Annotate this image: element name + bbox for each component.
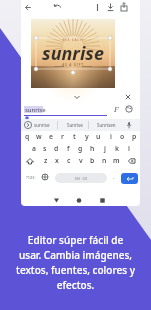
staticText: ?123 xyxy=(26,175,35,180)
button[interactable]: o xyxy=(117,131,128,142)
button[interactable]: x xyxy=(51,155,62,166)
button[interactable] xyxy=(40,172,50,182)
button[interactable]: h xyxy=(87,143,98,154)
staticText: SEE EACH xyxy=(31,38,115,42)
staticText: sunrise xyxy=(31,41,115,66)
button[interactable]: s xyxy=(39,143,50,154)
button[interactable] xyxy=(73,93,81,101)
staticText: c xyxy=(67,156,71,165)
button[interactable] xyxy=(105,0,116,15)
staticText: . xyxy=(113,173,115,181)
staticText: g xyxy=(78,144,83,153)
staticText: f xyxy=(67,144,70,153)
button[interactable]: Sunrise xyxy=(62,119,87,131)
staticText: p xyxy=(132,132,137,141)
button[interactable] xyxy=(93,0,102,15)
button[interactable]: e xyxy=(45,131,56,142)
staticText: u xyxy=(96,132,101,141)
button[interactable]: g xyxy=(75,143,86,154)
staticText: o xyxy=(120,132,125,141)
staticText: l xyxy=(128,144,130,153)
button[interactable]: EN · US xyxy=(55,173,107,183)
button[interactable]: l xyxy=(123,143,134,154)
button[interactable]: t xyxy=(69,131,80,142)
staticText: w xyxy=(36,132,42,141)
button[interactable]: d xyxy=(51,143,62,154)
staticText: Editor súper fácil de usar. Cambia imáge… xyxy=(0,233,151,292)
button[interactable] xyxy=(23,120,33,130)
button[interactable]: F xyxy=(114,104,119,114)
staticText: h xyxy=(90,144,95,153)
staticText: i xyxy=(110,132,112,141)
button[interactable]: y xyxy=(81,131,92,142)
button[interactable]: sunrise xyxy=(29,119,54,131)
staticText: sunrise xyxy=(34,122,50,128)
staticText: r xyxy=(61,132,64,141)
staticText: EN · US xyxy=(75,176,88,181)
button[interactable]: u xyxy=(93,131,104,142)
staticText: n xyxy=(102,156,107,165)
button[interactable] xyxy=(21,0,37,15)
staticText: Sunrisen xyxy=(97,122,116,128)
button[interactable] xyxy=(118,0,130,15)
button[interactable] xyxy=(124,104,134,114)
staticText: z xyxy=(44,156,48,165)
button[interactable] xyxy=(124,93,132,101)
staticText: m xyxy=(113,156,120,165)
button[interactable] xyxy=(51,0,64,15)
button[interactable]: sunrise xyxy=(24,105,107,117)
button[interactable]: ?123 xyxy=(23,171,37,183)
button[interactable]: w xyxy=(33,131,44,142)
button[interactable]: b xyxy=(87,155,98,166)
button[interactable]: i xyxy=(105,131,116,142)
button[interactable]: z xyxy=(40,155,51,166)
button[interactable]: . xyxy=(109,171,119,183)
staticText: b xyxy=(90,156,95,165)
staticText: a xyxy=(32,144,36,153)
staticText: v xyxy=(79,156,83,165)
button[interactable]: j xyxy=(99,143,110,154)
staticText: k xyxy=(115,144,119,153)
button[interactable] xyxy=(24,156,36,166)
button[interactable]: q xyxy=(22,131,33,142)
staticText: q xyxy=(25,132,30,141)
button[interactable]: n xyxy=(99,155,110,166)
button[interactable] xyxy=(124,120,134,130)
staticText: s xyxy=(43,144,47,153)
button[interactable]: c xyxy=(63,155,74,166)
button[interactable]: a xyxy=(28,143,39,154)
button[interactable]: f xyxy=(63,143,74,154)
staticText: d xyxy=(54,144,59,153)
staticText: e xyxy=(49,132,53,141)
staticText: y xyxy=(85,132,89,141)
button[interactable]: r xyxy=(57,131,68,142)
staticText: t xyxy=(73,132,76,141)
button[interactable]: k xyxy=(111,143,122,154)
staticText: Sunrise xyxy=(67,122,83,128)
button[interactable]: v xyxy=(75,155,86,166)
button[interactable] xyxy=(125,156,138,166)
button[interactable] xyxy=(121,173,138,184)
staticText: sunrise xyxy=(25,106,46,114)
staticText: AS A GIFT xyxy=(31,63,115,67)
button[interactable]: m xyxy=(111,155,122,166)
button[interactable]: Sunrisen xyxy=(92,119,121,131)
staticText: j xyxy=(104,144,106,153)
staticText: x xyxy=(55,156,59,165)
button[interactable]: p xyxy=(129,131,140,142)
